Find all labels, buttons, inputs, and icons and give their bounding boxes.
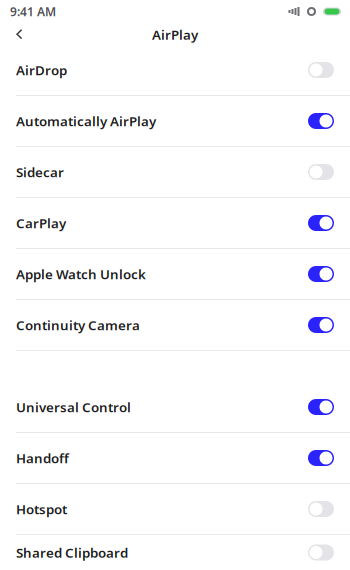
button[interactable]: Automatically AirPlay <box>0 96 350 147</box>
staticText: AirDrop <box>16 61 67 79</box>
staticText: Continuity Camera <box>16 316 140 334</box>
button[interactable]: Back <box>0 24 35 45</box>
staticText: Automatically AirPlay <box>16 112 156 130</box>
staticText: AirPlay <box>152 26 198 43</box>
staticText: Shared Clipboard <box>16 544 128 561</box>
button[interactable]: Universal Control <box>0 382 350 433</box>
staticText: 9:41 AM <box>10 3 56 19</box>
staticText: CarPlay <box>16 214 66 232</box>
button[interactable]: Shared Clipboard <box>0 535 350 570</box>
button[interactable]: Continuity Camera <box>0 300 350 351</box>
button[interactable]: Sidecar <box>0 147 350 198</box>
staticText: Sidecar <box>16 163 64 181</box>
staticText: Hotspot <box>16 500 67 518</box>
button[interactable]: Handoff <box>0 433 350 484</box>
staticText: Apple Watch Unlock <box>16 265 146 283</box>
button[interactable]: Hotspot <box>0 484 350 535</box>
staticText: Handoff <box>16 449 69 467</box>
button[interactable]: Apple Watch Unlock <box>0 249 350 300</box>
button[interactable]: CarPlay <box>0 198 350 249</box>
staticText: Universal Control <box>16 398 131 416</box>
button[interactable]: AirDrop <box>0 45 350 96</box>
